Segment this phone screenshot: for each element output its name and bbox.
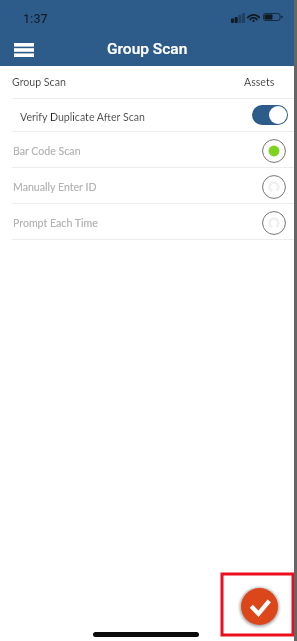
- button[interactable]: Verify Duplicate After Scan: [0, 99, 297, 131]
- button[interactable]: Menu: [10, 35, 38, 63]
- staticText: Group Scan: [12, 76, 66, 89]
- staticText: Prompt Each Time: [13, 217, 98, 230]
- staticText: Manually Enter ID: [13, 181, 97, 194]
- button[interactable]: [252, 105, 288, 125]
- button[interactable]: Confirm: [241, 588, 278, 625]
- staticText: 1:37: [23, 11, 48, 26]
- button[interactable]: Bar Code Scan: [0, 132, 297, 167]
- button[interactable]: Prompt Each Time: [0, 204, 297, 239]
- staticText: Verify Duplicate After Scan: [20, 111, 145, 124]
- button[interactable]: Manually Enter ID: [0, 168, 297, 203]
- staticText: Assets: [244, 76, 275, 89]
- staticText: Bar Code Scan: [13, 145, 81, 158]
- staticText: Group Scan: [107, 40, 188, 58]
